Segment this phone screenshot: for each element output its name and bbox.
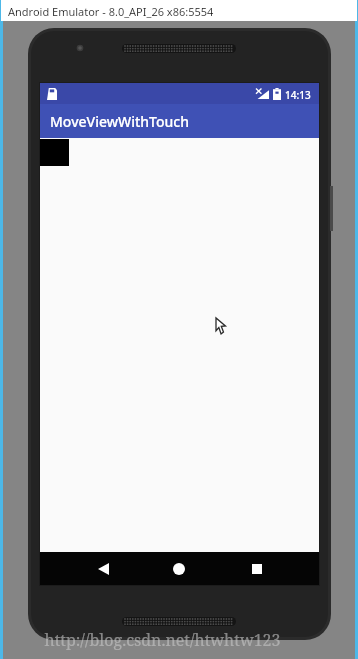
staticText: http://blog.csdn.net/htwhtw123 (44, 629, 281, 651)
button[interactable]: Home (157, 552, 202, 585)
staticText: Android Emulator - 8.0_API_26 x86:5554 (8, 4, 214, 19)
button[interactable]: Back (82, 552, 127, 585)
staticText: 14:13 (285, 88, 311, 102)
button[interactable]: Recent apps (235, 552, 280, 585)
staticText: MoveViewWithTouch (50, 112, 189, 131)
